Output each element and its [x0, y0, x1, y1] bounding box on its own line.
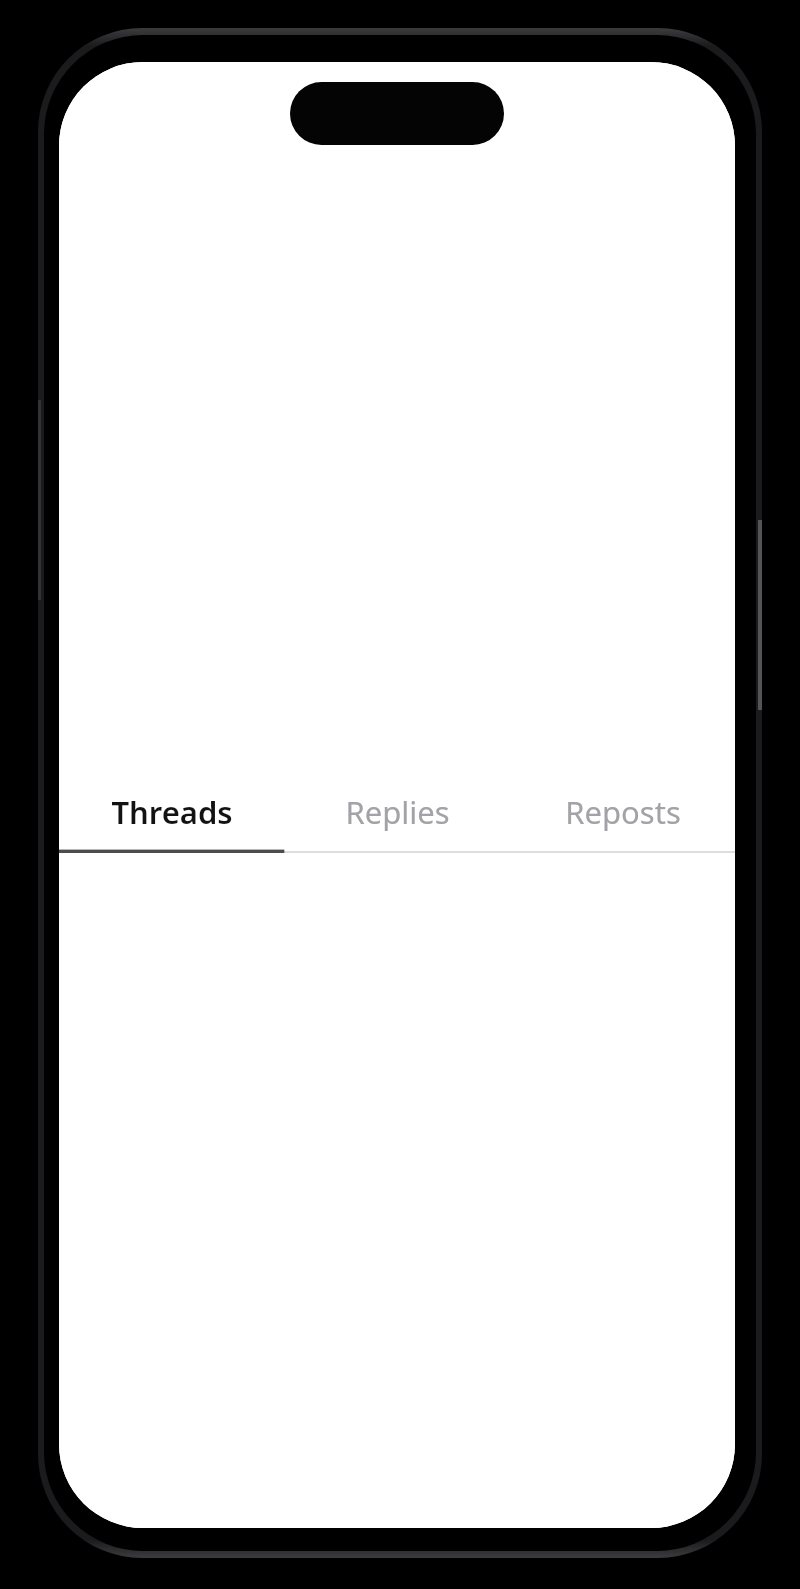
- button[interactable]: Threads: [59, 774, 285, 849]
- staticText: Replies: [345, 791, 450, 833]
- staticText: Reposts: [565, 791, 681, 833]
- staticText: Threads: [111, 791, 233, 833]
- button[interactable]: Replies: [285, 774, 510, 849]
- button[interactable]: Reposts: [510, 774, 735, 849]
